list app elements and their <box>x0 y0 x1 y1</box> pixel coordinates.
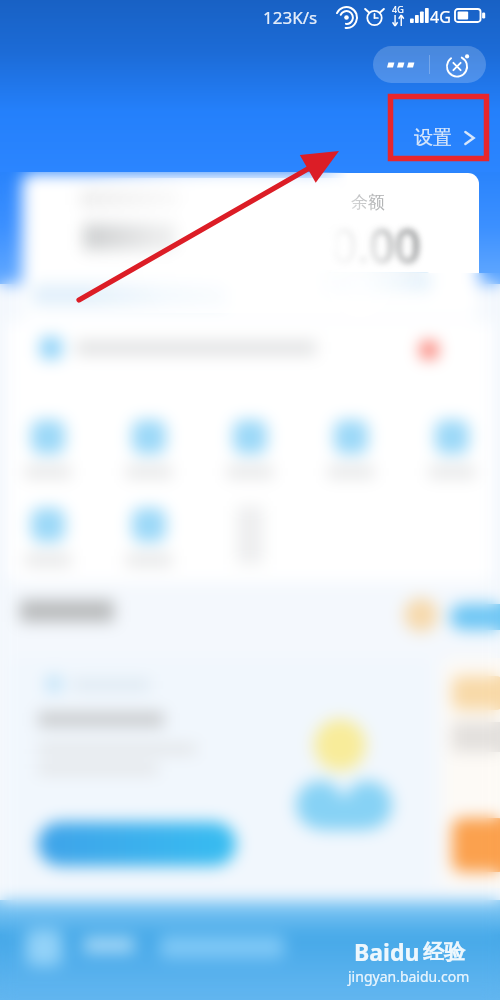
button[interactable] <box>202 504 298 580</box>
button[interactable] <box>101 504 197 580</box>
staticText: 4G <box>430 6 451 28</box>
button[interactable] <box>0 504 96 580</box>
button[interactable] <box>202 416 298 492</box>
staticText: 123K/s <box>263 6 318 29</box>
button[interactable] <box>40 337 62 359</box>
staticText: 0.00 <box>331 215 421 276</box>
staticText: jingyan.baidu.com <box>348 967 470 986</box>
button[interactable] <box>101 416 197 492</box>
button[interactable] <box>404 416 500 492</box>
button[interactable] <box>101 504 197 580</box>
button[interactable] <box>0 416 96 492</box>
staticText: 余额 <box>351 192 385 211</box>
button[interactable] <box>202 416 298 492</box>
staticText: 经验 <box>423 939 465 965</box>
button[interactable] <box>40 337 62 359</box>
button[interactable] <box>38 822 236 866</box>
button[interactable] <box>404 416 500 492</box>
staticText: 余额 <box>351 192 385 211</box>
button[interactable] <box>202 504 298 580</box>
button[interactable] <box>101 416 197 492</box>
staticText: 4G <box>392 3 404 15</box>
button[interactable]: 设置 <box>414 123 476 153</box>
button[interactable] <box>303 416 399 492</box>
button[interactable] <box>303 416 399 492</box>
staticText: 设置 <box>414 126 452 150</box>
staticText: Baidu <box>354 936 420 967</box>
button[interactable] <box>0 416 96 492</box>
button[interactable] <box>0 504 96 580</box>
button[interactable]: Mini program menu and close <box>373 46 486 83</box>
button[interactable] <box>38 822 236 866</box>
staticText: 0.00 <box>331 215 421 276</box>
